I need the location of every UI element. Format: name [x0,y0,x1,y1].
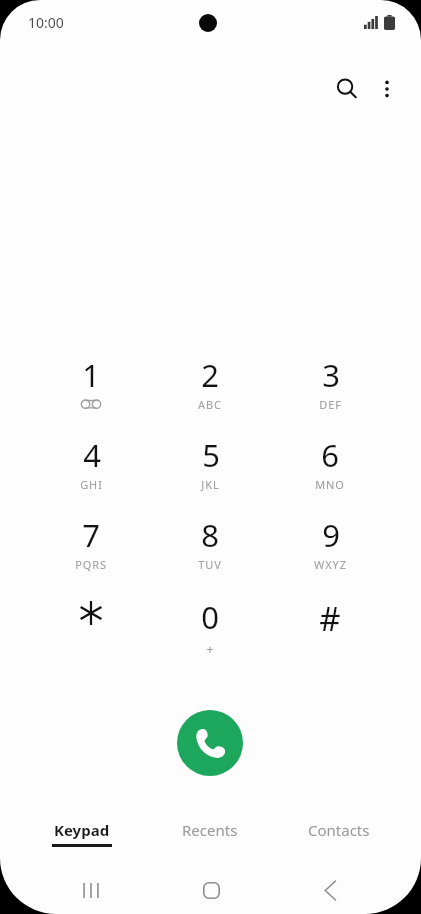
button[interactable]: 6 [276,434,384,510]
button[interactable]: 8 [156,514,264,590]
staticText: 7 [82,514,100,556]
staticText: 1 [82,354,100,396]
staticText: GHI [80,477,103,492]
staticText: MNO [315,477,345,492]
button[interactable]: # [276,596,384,672]
staticText: 6 [321,434,339,476]
button[interactable]: 2 [156,354,264,430]
button[interactable]: Call [177,710,243,776]
button[interactable]: 1 [37,354,145,430]
button[interactable]: Keypad [22,812,142,858]
button[interactable]: Search [326,68,368,110]
button[interactable]: Recent apps [63,866,119,914]
button[interactable]: 9 [276,514,384,590]
staticText: Recents [182,820,238,840]
button[interactable]: 0 [156,596,264,672]
button[interactable]: Back [302,866,358,914]
staticText: + [206,640,214,658]
staticText: Contacts [308,820,370,840]
button[interactable]: 3 [276,354,384,430]
button[interactable]: 7 [37,514,145,590]
staticText: 9 [322,514,340,556]
button[interactable]: Contacts [279,812,399,858]
staticText: TUV [198,557,222,572]
staticText: 4 [83,434,101,476]
staticText: WXYZ [314,557,347,572]
staticText: 0 [201,596,219,638]
staticText: ABC [198,397,222,412]
staticText: 2 [201,354,219,396]
button[interactable]: Home [183,866,239,914]
button[interactable]: More options [366,68,408,110]
staticText: 8 [201,514,219,556]
button[interactable]: 5 [156,434,264,510]
staticText: DEF [319,397,342,412]
staticText: JKL [201,477,220,492]
button[interactable]: 4 [37,434,145,510]
staticText: 5 [202,434,220,476]
staticText: 3 [322,354,340,396]
staticText: Keypad [54,820,110,840]
staticText: # [319,596,341,641]
button[interactable]: Recents [150,812,270,858]
button[interactable] [37,596,145,672]
staticText: PQRS [75,557,107,572]
staticText: 10:00 [28,13,64,32]
